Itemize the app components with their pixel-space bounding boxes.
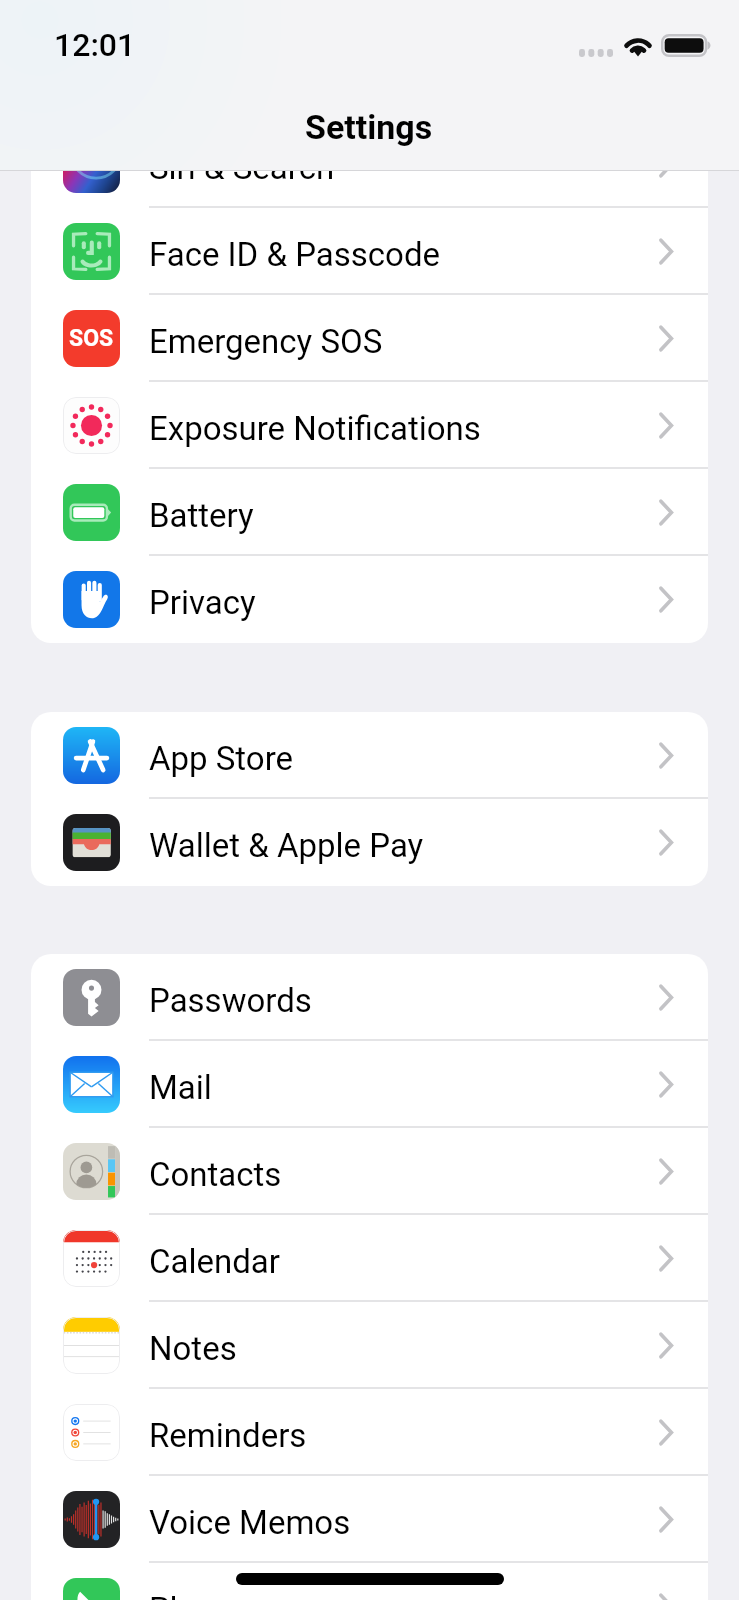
button[interactable]: Calendar bbox=[31, 1215, 708, 1302]
staticText: Face ID & Passcode bbox=[149, 235, 658, 274]
other: Cellular signal bbox=[579, 49, 613, 57]
button[interactable]: Phone bbox=[31, 1563, 708, 1600]
staticText: Mail bbox=[149, 1068, 658, 1107]
staticText: Phone bbox=[149, 1590, 658, 1600]
staticText: SOS bbox=[69, 325, 114, 352]
button[interactable]: Voice Memos bbox=[31, 1476, 708, 1563]
button[interactable]: App Store bbox=[31, 712, 708, 799]
staticText: Settings bbox=[305, 107, 433, 147]
staticText: Emergency SOS bbox=[149, 322, 658, 361]
staticText: Privacy bbox=[149, 583, 658, 622]
button[interactable]: Battery bbox=[31, 469, 708, 556]
button[interactable]: Privacy bbox=[31, 556, 708, 643]
staticText: Voice Memos bbox=[149, 1503, 658, 1542]
button[interactable]: Contacts bbox=[31, 1128, 708, 1215]
staticText: Battery bbox=[149, 496, 658, 535]
staticText: Passwords bbox=[149, 981, 658, 1020]
staticText: Reminders bbox=[149, 1416, 658, 1455]
staticText: Siri & Search bbox=[149, 148, 658, 187]
button[interactable]: Exposure Notifications bbox=[31, 382, 708, 469]
staticText: Contacts bbox=[149, 1155, 658, 1194]
other: Battery bbox=[661, 34, 711, 57]
staticText: Notes bbox=[149, 1329, 658, 1368]
button[interactable]: Passwords bbox=[31, 954, 708, 1041]
button[interactable]: Wallet & Apple Pay bbox=[31, 799, 708, 886]
button[interactable]: Reminders bbox=[31, 1389, 708, 1476]
button[interactable]: Siri & Search bbox=[31, 121, 708, 208]
button[interactable]: Mail bbox=[31, 1041, 708, 1128]
staticText: 12:01 bbox=[54, 26, 136, 64]
button[interactable]: Face ID & Passcode bbox=[31, 208, 708, 295]
staticText: Calendar bbox=[149, 1242, 658, 1281]
button[interactable]: Notes bbox=[31, 1302, 708, 1389]
staticText: Wallet & Apple Pay bbox=[149, 826, 658, 865]
button[interactable]: SOS bbox=[31, 295, 708, 382]
other: Wi-Fi bbox=[623, 32, 653, 56]
staticText: Exposure Notifications bbox=[149, 409, 658, 448]
staticText: App Store bbox=[149, 739, 658, 778]
